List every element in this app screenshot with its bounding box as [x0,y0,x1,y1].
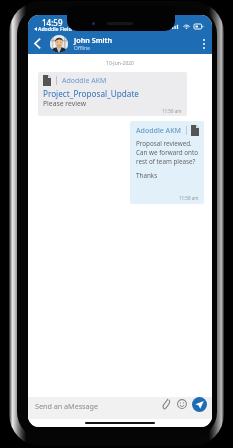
staticText: Please review [43,99,86,108]
button[interactable]: Attach file [159,393,173,415]
staticText: 14:59 [42,17,63,28]
button[interactable]: Send [192,397,207,412]
button[interactable]: More options [196,33,212,54]
staticText: 11:56 am [162,108,182,114]
staticText: 11:58 am [179,195,199,201]
button[interactable]: Adoddle AKM [130,121,204,204]
staticText: Project_Proposal_Update [43,88,139,99]
staticText: Offline [74,45,90,52]
staticText: Thanks [136,171,158,180]
button[interactable]: Emoji [176,393,188,415]
staticText: rest of team please? [136,157,196,166]
button[interactable]: Send an aMessage [35,401,159,411]
button[interactable]: Adoddle AKM [38,72,187,116]
staticText: Proposal reviewed. [136,139,192,148]
staticText: Adoddle AKM [136,126,182,136]
staticText: 10-Jun-2020 [28,60,212,67]
staticText: Adoddle AKM [62,76,107,86]
staticText: John Smith [74,35,113,45]
staticText: Send an aMessage [35,401,99,411]
staticText: Adoddle Field [38,25,72,32]
staticText: Can we forward onto [136,148,199,157]
button[interactable]: Back [28,33,46,54]
